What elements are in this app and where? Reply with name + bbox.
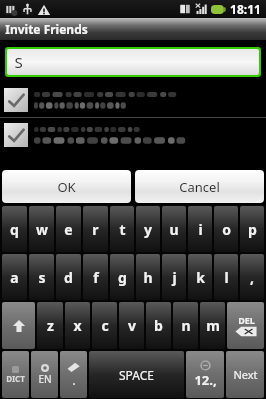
staticText: l	[224, 268, 229, 287]
staticText: p	[248, 220, 257, 239]
button[interactable]: w	[29, 206, 54, 252]
staticText: n	[181, 316, 191, 335]
staticText: Cancel	[179, 178, 220, 196]
staticText: g	[118, 268, 127, 287]
staticText: Next	[233, 367, 258, 382]
button[interactable]: i	[188, 206, 212, 252]
button[interactable]: Numbers and symbols	[186, 351, 224, 398]
button[interactable]: S	[7, 49, 259, 75]
button[interactable]: m	[200, 302, 225, 349]
button[interactable]: ,	[240, 254, 264, 300]
button[interactable]: Delete	[227, 302, 264, 349]
staticText: q	[10, 220, 19, 239]
staticText: 18:11	[230, 1, 261, 17]
staticText: c	[101, 316, 109, 335]
button[interactable]: n	[173, 302, 198, 349]
button[interactable]: d	[56, 254, 81, 300]
button[interactable]: e	[56, 206, 81, 252]
button[interactable]: l	[214, 254, 238, 300]
staticText: e	[64, 220, 73, 239]
button[interactable]: z	[37, 302, 63, 349]
button[interactable]: h	[136, 254, 160, 300]
button[interactable]: t	[110, 206, 134, 252]
staticText: f	[93, 268, 99, 287]
button[interactable]: s	[29, 254, 54, 300]
button[interactable]: g	[110, 254, 134, 300]
button[interactable]: u	[162, 206, 186, 252]
button[interactable]: f	[83, 254, 108, 300]
button[interactable]: c	[92, 302, 117, 349]
staticText: EN	[38, 372, 52, 386]
button[interactable]: j	[162, 254, 186, 300]
staticText: s	[38, 268, 46, 287]
button[interactable]: Next	[226, 351, 264, 398]
button[interactable]: r	[83, 206, 108, 252]
staticText: OK	[57, 178, 76, 196]
button[interactable]: Cancel	[135, 170, 264, 203]
button[interactable]: OK	[2, 170, 131, 203]
button[interactable]: b	[146, 302, 171, 349]
button[interactable]: a	[2, 254, 27, 300]
staticText: a	[10, 268, 19, 287]
staticText: v	[128, 316, 136, 335]
staticText: k	[196, 268, 205, 287]
button[interactable]: y	[136, 206, 160, 252]
staticText: r	[92, 220, 99, 239]
staticText: Invite Friends	[5, 21, 88, 37]
staticText: o	[222, 220, 231, 239]
staticText: m	[206, 316, 220, 335]
staticText: h	[143, 268, 153, 287]
staticText: u	[169, 220, 179, 239]
button[interactable]: k	[188, 254, 212, 300]
staticText: x	[73, 316, 82, 335]
staticText: 12.,	[194, 371, 217, 389]
button[interactable]: v	[119, 302, 144, 349]
button[interactable]: Symbols	[60, 351, 87, 398]
button[interactable]: x	[65, 302, 90, 349]
button[interactable]	[0, 118, 266, 152]
staticText: b	[154, 316, 163, 335]
staticText: .	[72, 373, 76, 388]
staticText: i	[198, 220, 203, 239]
staticText: y	[144, 220, 152, 239]
button[interactable]: q	[2, 206, 27, 252]
button[interactable]: p	[240, 206, 264, 252]
staticText: z	[47, 316, 54, 335]
staticText: S	[14, 52, 23, 72]
staticText: DICT	[6, 373, 25, 384]
button[interactable]: o	[214, 206, 238, 252]
staticText: w	[36, 220, 48, 239]
staticText: j	[172, 268, 177, 287]
button[interactable]: SPACE	[89, 351, 184, 398]
staticText: DEL	[238, 314, 255, 326]
button[interactable]: Dictionary	[2, 351, 29, 398]
button[interactable]	[0, 83, 266, 117]
button[interactable]: Language	[31, 351, 58, 398]
staticText: t	[119, 220, 126, 239]
button[interactable]: Shift	[2, 302, 35, 349]
staticText: SPACE	[119, 367, 154, 383]
staticText: d	[64, 268, 73, 287]
staticText: ,	[250, 268, 254, 287]
